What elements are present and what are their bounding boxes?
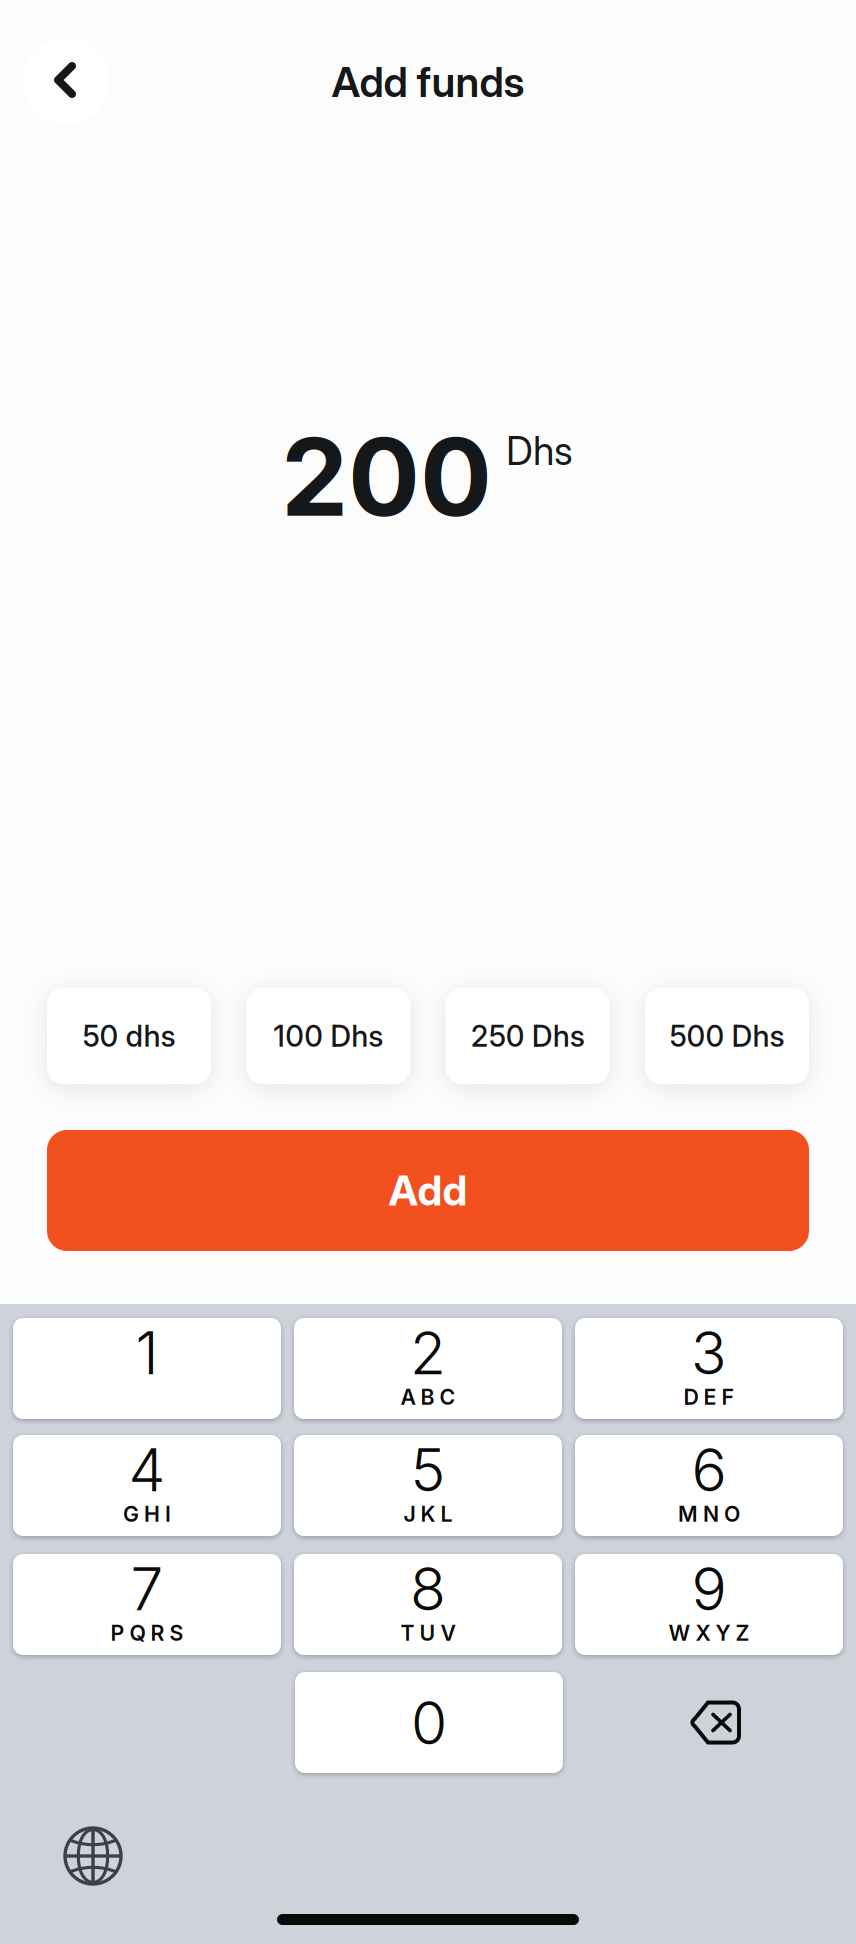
button[interactable]: 3 [575, 1318, 843, 1419]
staticText: M N O [678, 1501, 740, 1527]
button[interactable]: Back [23, 38, 109, 124]
staticText: Add [388, 1165, 467, 1215]
button[interactable]: Add [47, 1130, 809, 1251]
button[interactable]: 50 dhs [47, 988, 211, 1084]
staticText: 7 [130, 1553, 163, 1624]
button[interactable]: 100 Dhs [246, 988, 410, 1084]
button[interactable]: 0 [295, 1672, 563, 1773]
button[interactable]: 4 [13, 1435, 281, 1536]
staticText: 2 [410, 1317, 446, 1388]
staticText: 1 [135, 1317, 158, 1388]
staticText: Dhs [506, 428, 573, 474]
staticText: 4 [128, 1434, 165, 1505]
button[interactable]: Delete [635, 1672, 795, 1773]
staticText: 6 [691, 1434, 726, 1505]
button[interactable]: 2 [294, 1318, 562, 1419]
staticText: J K L [403, 1501, 452, 1527]
staticText: G H I [123, 1501, 171, 1527]
staticText: 9 [691, 1553, 726, 1624]
button[interactable]: 250 Dhs [446, 988, 610, 1084]
staticText: 8 [410, 1553, 446, 1624]
button[interactable]: 7 [13, 1554, 281, 1655]
staticText: 0 [411, 1687, 447, 1758]
staticText: P Q R S [110, 1620, 183, 1646]
staticText: 250 Dhs [471, 1018, 585, 1054]
button[interactable]: 6 [575, 1435, 843, 1536]
button[interactable]: 8 [294, 1554, 562, 1655]
staticText: 5 [410, 1434, 445, 1505]
staticText: A B C [400, 1384, 455, 1410]
staticText: 3 [691, 1317, 727, 1388]
staticText: T U V [400, 1620, 455, 1646]
button[interactable]: Next keyboard [65, 1828, 121, 1884]
button[interactable]: 9 [575, 1554, 843, 1655]
staticText: D E F [683, 1384, 734, 1410]
staticText: 50 dhs [82, 1018, 175, 1054]
staticText: 500 Dhs [669, 1018, 784, 1054]
button[interactable]: 1 [13, 1318, 281, 1419]
staticText: W X Y Z [668, 1620, 749, 1646]
button[interactable]: 500 Dhs [645, 988, 809, 1084]
staticText: 100 Dhs [273, 1018, 383, 1054]
button[interactable]: 5 [294, 1435, 562, 1536]
staticText: 200 [281, 412, 492, 542]
staticText: Add funds [331, 57, 524, 107]
